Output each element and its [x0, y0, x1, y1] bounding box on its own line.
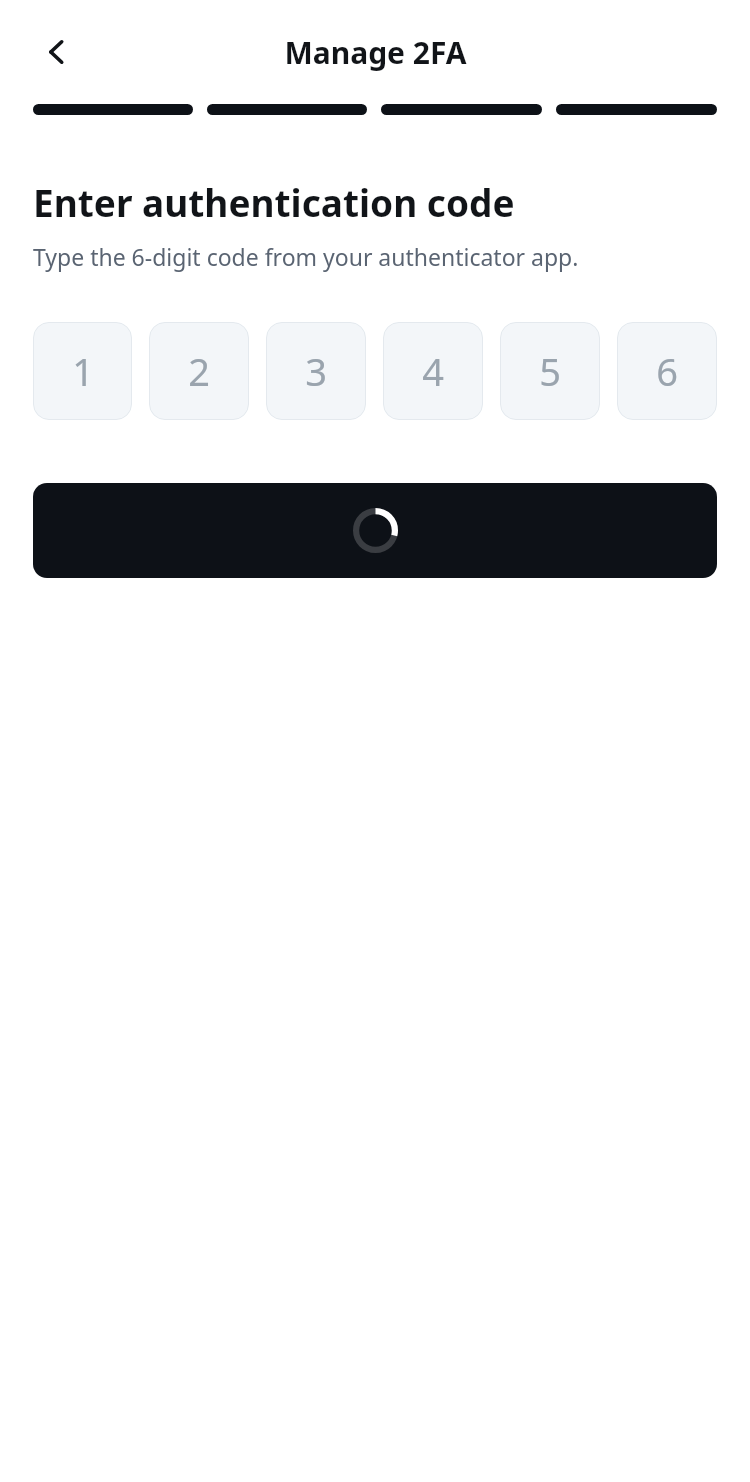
button[interactable]: 2 [149, 322, 249, 420]
button[interactable]: 3 [266, 322, 366, 420]
staticText: 3 [305, 345, 327, 397]
staticText: 2 [188, 345, 210, 397]
staticText: Manage 2FA [284, 32, 467, 73]
staticText: 1 [72, 345, 94, 397]
staticText: 5 [539, 345, 561, 397]
button[interactable]: 1 [33, 322, 132, 420]
staticText: Enter authentication code [33, 177, 717, 227]
button[interactable]: 4 [383, 322, 483, 420]
staticText: 4 [422, 345, 444, 397]
button[interactable]: Back [33, 26, 85, 78]
staticText: 6 [656, 345, 678, 397]
button[interactable]: 6 [617, 322, 717, 420]
button[interactable]: 5 [500, 322, 600, 420]
button[interactable]: Verifying [33, 483, 717, 578]
staticText: Type the 6-digit code from your authenti… [33, 241, 717, 272]
